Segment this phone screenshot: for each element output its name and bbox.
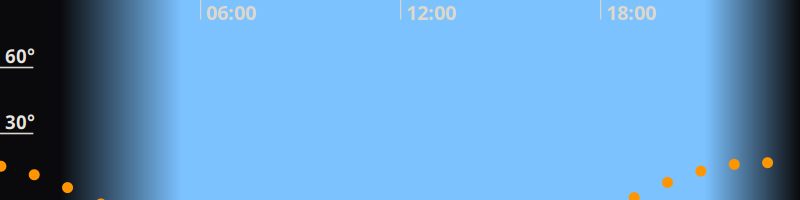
staticText: 06:00 (206, 0, 256, 26)
staticText: 60° (5, 43, 35, 68)
staticText: 18:00 (606, 0, 656, 26)
staticText: 30° (5, 109, 35, 134)
staticText: 12:00 (406, 0, 456, 26)
